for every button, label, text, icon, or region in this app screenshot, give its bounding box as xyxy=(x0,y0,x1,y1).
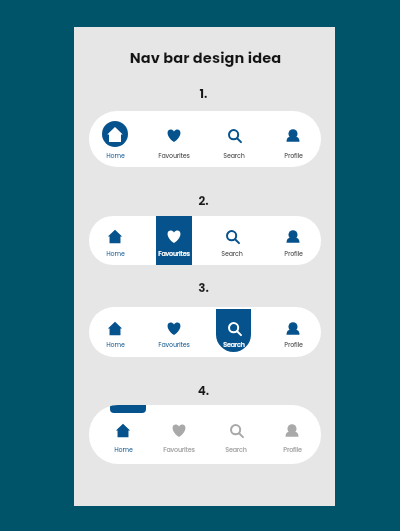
button[interactable]: Search xyxy=(214,111,254,167)
button[interactable]: Search xyxy=(216,405,256,464)
staticText: Search xyxy=(223,151,245,160)
staticText: Search xyxy=(223,340,245,349)
button[interactable]: Favourites xyxy=(159,405,199,464)
button[interactable]: Profile xyxy=(273,111,313,167)
button[interactable]: Profile xyxy=(272,405,312,464)
button[interactable]: Home xyxy=(95,111,135,167)
staticText: 3. xyxy=(73,279,334,296)
staticText: Home xyxy=(106,151,125,160)
staticText: Profile xyxy=(283,445,302,454)
button[interactable]: Profile xyxy=(273,307,313,357)
staticText: Profile xyxy=(284,151,303,160)
staticText: Nav bar design idea xyxy=(75,48,336,68)
staticText: Favourites xyxy=(158,151,190,160)
staticText: Favourites xyxy=(158,249,190,258)
button[interactable]: Search xyxy=(212,216,252,265)
button[interactable]: Home xyxy=(95,216,135,265)
staticText: Home xyxy=(114,445,133,454)
staticText: Favourites xyxy=(158,340,190,349)
staticText: 1. xyxy=(73,85,334,102)
staticText: Search xyxy=(221,249,243,258)
staticText: Home xyxy=(106,249,125,258)
staticText: Search xyxy=(225,445,247,454)
staticText: Profile xyxy=(284,249,303,258)
staticText: Favourites xyxy=(163,445,195,454)
button[interactable]: Search xyxy=(214,307,254,357)
staticText: Profile xyxy=(284,340,303,349)
staticText: 2. xyxy=(73,192,334,209)
button[interactable]: Favourites xyxy=(156,216,192,265)
button[interactable]: Profile xyxy=(273,216,313,265)
staticText: Home xyxy=(106,340,125,349)
button[interactable]: Favourites xyxy=(154,307,194,357)
button[interactable]: Home xyxy=(103,405,143,464)
button[interactable]: Favourites xyxy=(154,111,194,167)
staticText: 4. xyxy=(73,382,334,399)
button[interactable]: Home xyxy=(95,307,135,357)
